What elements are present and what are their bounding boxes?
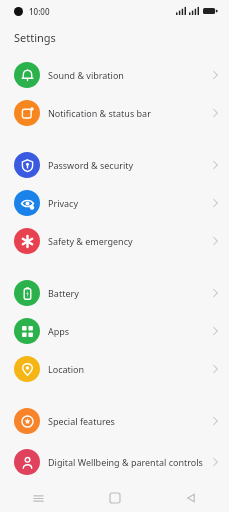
staticText: Battery xyxy=(48,287,79,299)
button[interactable]: Safety & emergency xyxy=(0,222,229,260)
button[interactable]: Back xyxy=(153,484,229,512)
button[interactable]: Sound & vibration xyxy=(0,56,229,94)
staticText: Sound & vibration xyxy=(48,69,124,81)
staticText: Password & security xyxy=(48,159,134,171)
staticText: Apps xyxy=(48,325,70,337)
button[interactable]: Special features xyxy=(0,402,229,440)
button[interactable]: Location xyxy=(0,350,229,388)
staticText: Notification & status bar xyxy=(48,107,151,119)
staticText: 10:00 xyxy=(29,6,50,17)
staticText: Settings xyxy=(14,30,56,45)
staticText: Privacy xyxy=(48,197,79,209)
button[interactable]: Privacy xyxy=(0,184,229,222)
button[interactable]: Battery xyxy=(0,274,229,312)
button[interactable]: Password & security xyxy=(0,146,229,184)
button[interactable]: Digital Wellbeing & parental controls xyxy=(0,440,229,484)
button[interactable]: Apps xyxy=(0,312,229,350)
staticText: Location xyxy=(48,363,85,375)
button[interactable]: Recent apps xyxy=(0,484,77,512)
staticText: Safety & emergency xyxy=(48,235,133,247)
staticText: Digital Wellbeing & parental controls xyxy=(48,456,203,468)
staticText: Special features xyxy=(48,415,115,427)
button[interactable]: Notification & status bar xyxy=(0,94,229,132)
button[interactable]: Home xyxy=(77,484,153,512)
